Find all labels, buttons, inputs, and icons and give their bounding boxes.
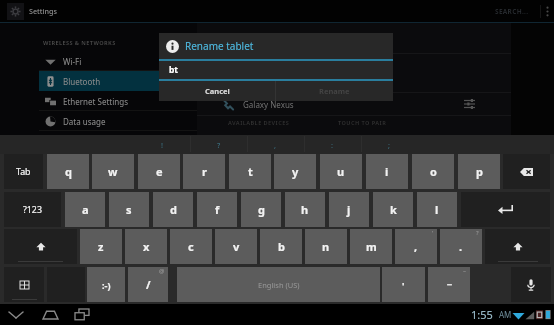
staticText: q bbox=[65, 164, 72, 179]
other: Shift bbox=[513, 242, 523, 252]
button[interactable]: Recent apps bbox=[70, 304, 94, 325]
other: Voice input bbox=[527, 279, 535, 291]
button[interactable]: s bbox=[109, 192, 149, 227]
button[interactable]: u bbox=[320, 154, 362, 189]
other: Shift bbox=[36, 242, 46, 252]
button[interactable]: w bbox=[92, 154, 134, 189]
staticText: 1:55 bbox=[471, 307, 493, 322]
staticText: f bbox=[215, 202, 220, 217]
staticText: Rename bbox=[319, 86, 350, 96]
button[interactable]: n bbox=[305, 229, 347, 264]
other: Enter bbox=[498, 204, 513, 215]
staticText: English (US) bbox=[258, 280, 300, 290]
button[interactable]: d bbox=[153, 192, 193, 227]
staticText: Wi-Fi bbox=[63, 56, 82, 67]
button[interactable]: Voice input bbox=[511, 267, 551, 302]
staticText: ? bbox=[476, 229, 479, 237]
button[interactable]: i bbox=[366, 154, 408, 189]
staticText: l bbox=[435, 202, 439, 217]
button[interactable]: e bbox=[138, 154, 180, 189]
staticText: h bbox=[301, 202, 309, 217]
button[interactable]: x bbox=[125, 229, 167, 264]
staticText: :-) bbox=[102, 279, 111, 291]
button[interactable]: English (US) bbox=[177, 267, 380, 302]
staticText: z bbox=[98, 239, 104, 254]
button[interactable]: Shift bbox=[4, 229, 77, 264]
button[interactable]: c bbox=[170, 229, 212, 264]
staticText: j bbox=[347, 202, 351, 217]
button[interactable]: Backspace bbox=[503, 154, 550, 189]
staticText: s bbox=[126, 202, 132, 217]
button[interactable]: Hide keyboard bbox=[4, 304, 28, 325]
button[interactable]: ! bbox=[134, 135, 191, 154]
staticText: AVAILABLE DEVICES bbox=[228, 119, 290, 127]
button[interactable]: ? bbox=[190, 135, 247, 154]
button[interactable]: . bbox=[440, 229, 482, 264]
button[interactable]: Data usage bbox=[39, 111, 197, 131]
button[interactable]: ?123 bbox=[4, 192, 61, 227]
button[interactable]: :-) bbox=[87, 267, 125, 302]
button[interactable]: q bbox=[47, 154, 89, 189]
staticText: m bbox=[366, 239, 377, 254]
staticText: g bbox=[258, 202, 265, 217]
button[interactable]: Wi-Fi bbox=[39, 51, 197, 71]
staticText: k bbox=[390, 202, 397, 217]
staticText: u bbox=[337, 164, 345, 179]
button[interactable]: Hyphen bbox=[428, 267, 470, 302]
staticText: @ bbox=[159, 267, 165, 275]
button[interactable]: Enter bbox=[461, 192, 550, 227]
staticText: Galaxy Nexus bbox=[243, 99, 294, 110]
button[interactable]: t bbox=[229, 154, 271, 189]
staticText: t bbox=[248, 164, 253, 179]
button[interactable]: z bbox=[80, 229, 122, 264]
button[interactable]: Tab bbox=[4, 154, 43, 189]
button[interactable]: Shift bbox=[485, 229, 550, 264]
button[interactable]: Cancel bbox=[159, 81, 275, 101]
button[interactable]: Home bbox=[38, 304, 62, 325]
staticText: a bbox=[82, 202, 89, 217]
other: Hyphen bbox=[444, 279, 455, 290]
staticText: Settings bbox=[29, 6, 57, 16]
staticText: AM bbox=[499, 309, 512, 320]
button[interactable]: o bbox=[412, 154, 454, 189]
button[interactable]: / bbox=[128, 267, 168, 302]
staticText: v bbox=[233, 239, 240, 254]
button[interactable]: More options bbox=[541, 0, 554, 22]
button[interactable]: a bbox=[65, 192, 105, 227]
staticText: ' bbox=[402, 279, 405, 291]
staticText: r bbox=[202, 164, 207, 179]
button[interactable]: p bbox=[458, 154, 500, 189]
staticText: i bbox=[385, 164, 389, 179]
button[interactable]: h bbox=[285, 192, 325, 227]
button[interactable]: Search bbox=[488, 4, 536, 18]
button[interactable]: y bbox=[274, 154, 316, 189]
button[interactable]: r bbox=[183, 154, 225, 189]
staticText: Data usage bbox=[63, 116, 106, 127]
button[interactable]: ' bbox=[382, 267, 425, 302]
button[interactable]: Rename bbox=[276, 81, 393, 101]
button[interactable]: l bbox=[417, 192, 457, 227]
button[interactable]: m bbox=[350, 229, 392, 264]
staticText: e bbox=[156, 164, 163, 179]
button[interactable]: Ethernet Settings bbox=[39, 91, 197, 111]
button[interactable]: Bluetooth bbox=[39, 71, 197, 91]
button[interactable]: , bbox=[395, 229, 437, 264]
staticText: w bbox=[108, 164, 118, 179]
button[interactable]: g bbox=[241, 192, 281, 227]
button[interactable]: Device settings bbox=[459, 94, 479, 114]
button[interactable]: k bbox=[373, 192, 413, 227]
button[interactable]: b bbox=[260, 229, 302, 264]
staticText: – bbox=[463, 267, 467, 275]
button[interactable]: Keyboard settings bbox=[4, 267, 44, 302]
staticText: bt bbox=[169, 64, 179, 76]
staticText: n bbox=[322, 239, 330, 254]
button[interactable]: j bbox=[329, 192, 369, 227]
button[interactable]: f bbox=[197, 192, 237, 227]
staticText: ‘ bbox=[432, 229, 434, 237]
button[interactable]: v bbox=[215, 229, 257, 264]
staticText: ?123 bbox=[23, 204, 42, 216]
